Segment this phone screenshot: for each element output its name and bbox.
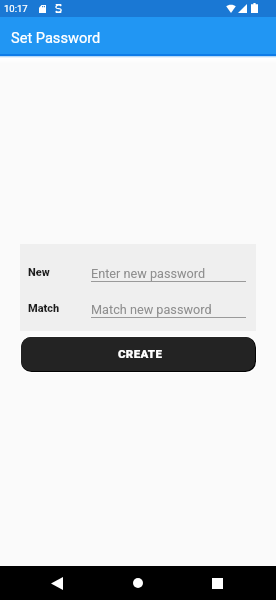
button[interactable]: Recent apps	[203, 566, 231, 600]
staticText: Match new password	[91, 302, 212, 317]
staticText: Set Password	[11, 29, 101, 46]
button[interactable]: Home	[124, 566, 152, 600]
button[interactable]: Set Password	[0, 17, 276, 54]
staticText: CREATE	[118, 347, 163, 360]
button[interactable]: CREATE	[21, 337, 255, 371]
staticText: Enter new password	[91, 266, 206, 281]
button[interactable]: Back	[43, 566, 71, 600]
staticText: New	[28, 266, 50, 279]
button[interactable]: Match	[20, 301, 256, 330]
staticText: 10:17	[4, 3, 28, 14]
staticText: Match	[28, 302, 60, 315]
button[interactable]: New	[20, 265, 256, 294]
